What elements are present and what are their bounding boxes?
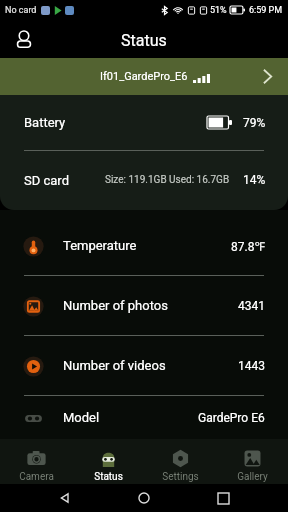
button[interactable]: Temperature — [0, 216, 288, 275]
button[interactable]: If01_GardePro_E6 — [0, 58, 288, 95]
staticText: 4341 — [238, 299, 265, 313]
button[interactable]: Battery — [0, 95, 288, 150]
staticText: Status — [94, 471, 123, 483]
staticText: 1443 — [238, 359, 265, 373]
button[interactable]: SD card — [0, 151, 288, 209]
button[interactable]: Gallery — [216, 440, 288, 483]
staticText: GardePro E6 — [198, 411, 265, 425]
button[interactable]: Status — [72, 440, 144, 483]
staticText: Battery — [24, 115, 66, 130]
button[interactable]: Home — [130, 484, 158, 512]
button[interactable]: Model — [0, 396, 288, 439]
staticText: No card — [5, 5, 37, 16]
button[interactable]: Number of photos — [0, 276, 288, 335]
button[interactable]: Number of videos — [0, 336, 288, 395]
staticText: 6:59 PM — [249, 5, 283, 16]
staticText: Gallery — [237, 471, 268, 483]
staticText: Camera — [19, 471, 54, 483]
staticText: 87.8℉ — [231, 238, 265, 254]
staticText: Status — [121, 31, 167, 50]
staticText: If01_GardePro_E6 — [100, 70, 188, 83]
staticText: 14% — [243, 173, 266, 187]
staticText: Number of videos — [63, 358, 166, 373]
button[interactable]: Settings — [144, 440, 216, 483]
staticText: Temperature — [63, 238, 137, 253]
staticText: Number of photos — [63, 298, 168, 313]
staticText: 79% — [243, 116, 266, 130]
staticText: SD card — [24, 173, 69, 188]
button[interactable]: Recents — [209, 484, 237, 512]
staticText: Settings — [162, 471, 199, 483]
staticText: Size: 119.1GB Used: 16.7GB — [105, 174, 230, 186]
button[interactable]: Account — [7, 22, 41, 56]
button[interactable]: Camera — [0, 440, 72, 483]
button[interactable]: Back — [51, 484, 79, 512]
staticText: Model — [63, 410, 100, 425]
staticText: 51% — [210, 5, 227, 16]
